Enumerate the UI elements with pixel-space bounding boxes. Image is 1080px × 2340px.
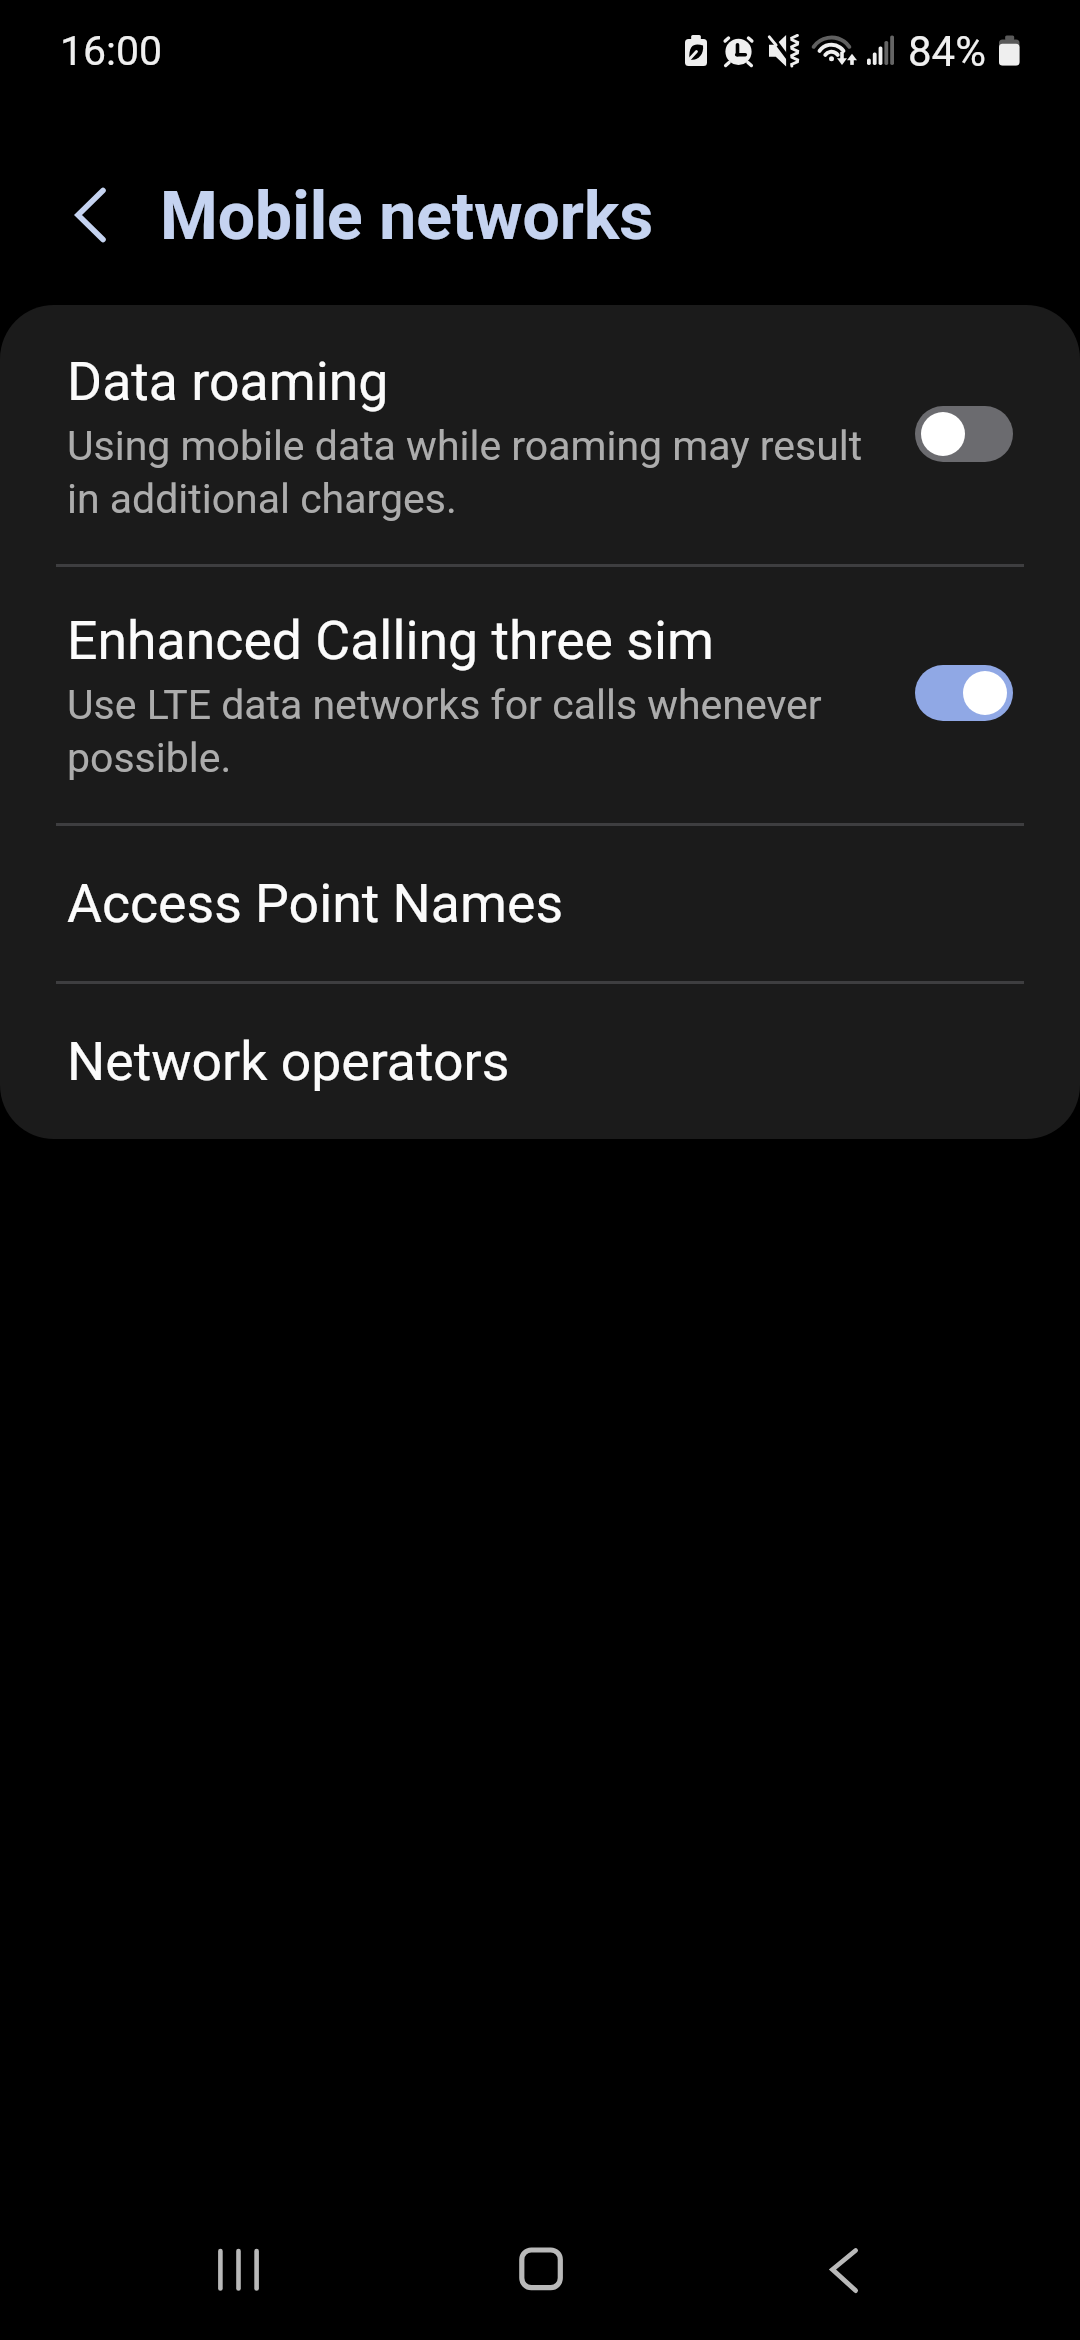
staticText: Enhanced Calling three sim <box>67 610 714 672</box>
staticText: Access Point Names <box>67 873 564 935</box>
button[interactable]: Data roaming <box>0 305 1080 565</box>
button[interactable]: Enhanced Calling three sim <box>0 567 1080 826</box>
button[interactable]: Network operators <box>0 984 1080 1139</box>
staticText: Network operators <box>67 1031 510 1093</box>
staticText: 16:00 <box>60 27 163 75</box>
button[interactable]: Home <box>471 2200 611 2340</box>
button[interactable]: Navigate up <box>45 178 117 252</box>
staticText: 84% <box>908 27 986 76</box>
staticText: Mobile networks <box>160 178 654 255</box>
staticText: Data roaming <box>67 351 389 413</box>
staticText: Use LTE data networks for calls whenever… <box>67 677 873 783</box>
staticText: Using mobile data while roaming may resu… <box>67 418 873 524</box>
button[interactable]: Off <box>915 406 1013 462</box>
button[interactable]: Recent apps <box>169 2200 309 2340</box>
button[interactable]: Access Point Names <box>0 826 1080 984</box>
button[interactable]: On <box>915 665 1013 721</box>
button[interactable]: Back <box>774 2200 914 2340</box>
